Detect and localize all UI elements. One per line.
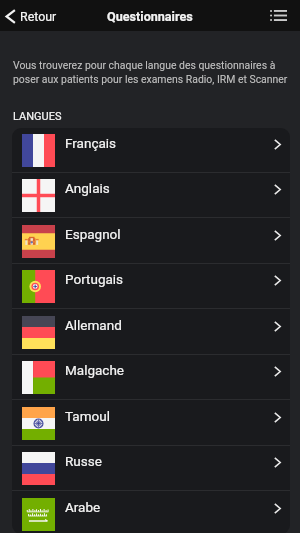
- staticText: Arabe: [65, 499, 101, 515]
- button[interactable]: Espagnol: [12, 219, 290, 264]
- staticText: Portugais: [65, 271, 124, 287]
- staticText: Anglais: [65, 180, 110, 196]
- staticText: Allemand: [65, 317, 122, 333]
- button[interactable]: Tamoul: [12, 401, 290, 446]
- staticText: Français: [65, 135, 117, 151]
- button[interactable]: Retour: [0, 0, 67, 31]
- button[interactable]: Anglais: [12, 173, 290, 218]
- staticText: Russe: [65, 453, 102, 469]
- button[interactable]: Allemand: [12, 310, 290, 355]
- button[interactable]: Malgache: [12, 355, 290, 400]
- button[interactable]: Russe: [12, 446, 290, 491]
- staticText: Espagnol: [65, 226, 121, 242]
- staticText: Questionnaires: [107, 9, 193, 24]
- button[interactable]: List view: [260, 0, 300, 31]
- staticText: Tamoul: [65, 408, 110, 424]
- button[interactable]: Arabe: [12, 492, 290, 533]
- button[interactable]: Portugais: [12, 264, 290, 309]
- button[interactable]: Français: [12, 128, 290, 173]
- staticText: LANGUES: [13, 110, 62, 123]
- staticText: Malgache: [65, 362, 124, 378]
- staticText: Vous trouverez pour chaque langue des qu…: [13, 59, 290, 85]
- staticText: Retour: [20, 9, 57, 24]
